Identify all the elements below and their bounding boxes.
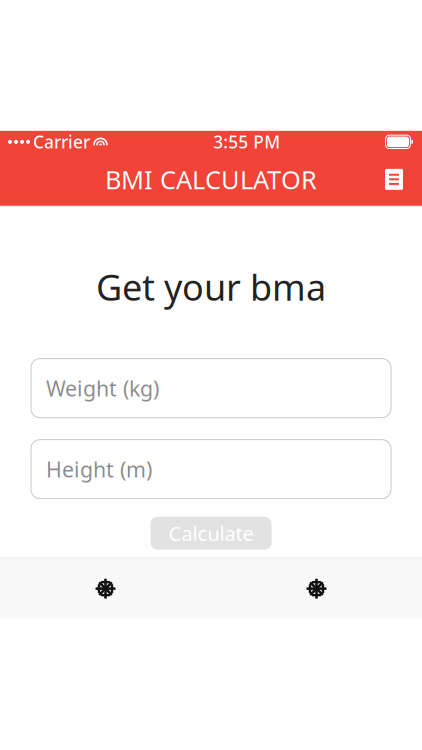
staticText: BMI CALCULATOR bbox=[105, 162, 317, 196]
button[interactable]: History bbox=[211, 558, 422, 619]
button[interactable]: Calculate bbox=[150, 517, 271, 550]
staticText: Carrier bbox=[33, 130, 90, 153]
button[interactable]: Weight (kg) bbox=[31, 359, 391, 418]
staticText: Weight (kg) bbox=[46, 374, 159, 402]
staticText: Calculate bbox=[168, 520, 253, 546]
staticText: 3:55 PM bbox=[213, 130, 280, 153]
button[interactable]: History bbox=[372, 158, 416, 201]
staticText: Height (m) bbox=[46, 455, 152, 483]
button[interactable]: Height (m) bbox=[31, 440, 391, 499]
staticText: Get your bma bbox=[96, 263, 326, 311]
button[interactable]: Calculator bbox=[0, 558, 211, 619]
